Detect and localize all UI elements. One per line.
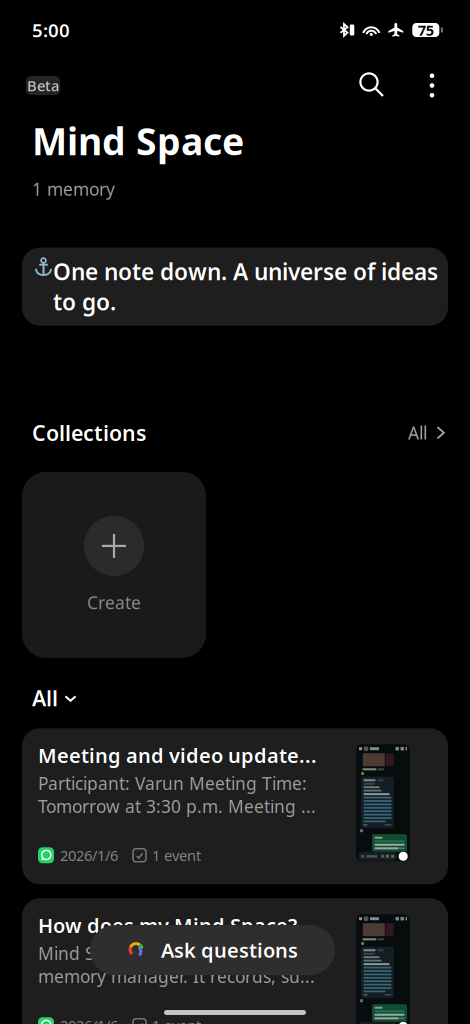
button[interactable]: How does my Mind Space? bbox=[22, 898, 448, 1024]
staticText: 75 bbox=[418, 20, 434, 40]
button[interactable]: All bbox=[32, 684, 78, 712]
button[interactable]: Create bbox=[22, 472, 206, 658]
staticText: Ask questions bbox=[161, 937, 298, 963]
button[interactable]: All bbox=[408, 421, 449, 444]
button[interactable]: Ask questions bbox=[90, 925, 335, 975]
staticText: 2026/1/6 bbox=[60, 1015, 118, 1024]
staticText: Collections bbox=[32, 419, 147, 447]
staticText: memory manager. It records, su... bbox=[38, 965, 315, 988]
staticText: All bbox=[32, 684, 58, 712]
staticText: 1 event bbox=[152, 845, 201, 865]
staticText: Meeting and video update... bbox=[38, 742, 317, 769]
staticText: 2026/1/6 bbox=[60, 845, 118, 865]
staticText: 5:00 bbox=[32, 18, 70, 42]
staticText: How does my Mind Space? bbox=[38, 912, 297, 939]
staticText: 1 event bbox=[152, 1015, 201, 1024]
button[interactable]: Meeting and video update... bbox=[22, 728, 448, 884]
staticText: Tomorrow at 3:30 p.m. Meeting ... bbox=[38, 795, 316, 818]
staticText: Create bbox=[87, 591, 141, 614]
button[interactable]: Search bbox=[351, 64, 394, 107]
staticText: Beta bbox=[27, 76, 59, 95]
staticText: Mind Space bbox=[32, 116, 244, 166]
staticText: Participant: Varun Meeting Time: bbox=[38, 772, 307, 795]
staticText: Mind Space is an AI-powered bbox=[38, 942, 278, 965]
staticText: 1 memory bbox=[32, 178, 115, 201]
button[interactable]: More options bbox=[412, 65, 452, 106]
staticText: One note down. A universe of ideas to go… bbox=[53, 256, 438, 317]
staticText: All bbox=[408, 421, 427, 444]
